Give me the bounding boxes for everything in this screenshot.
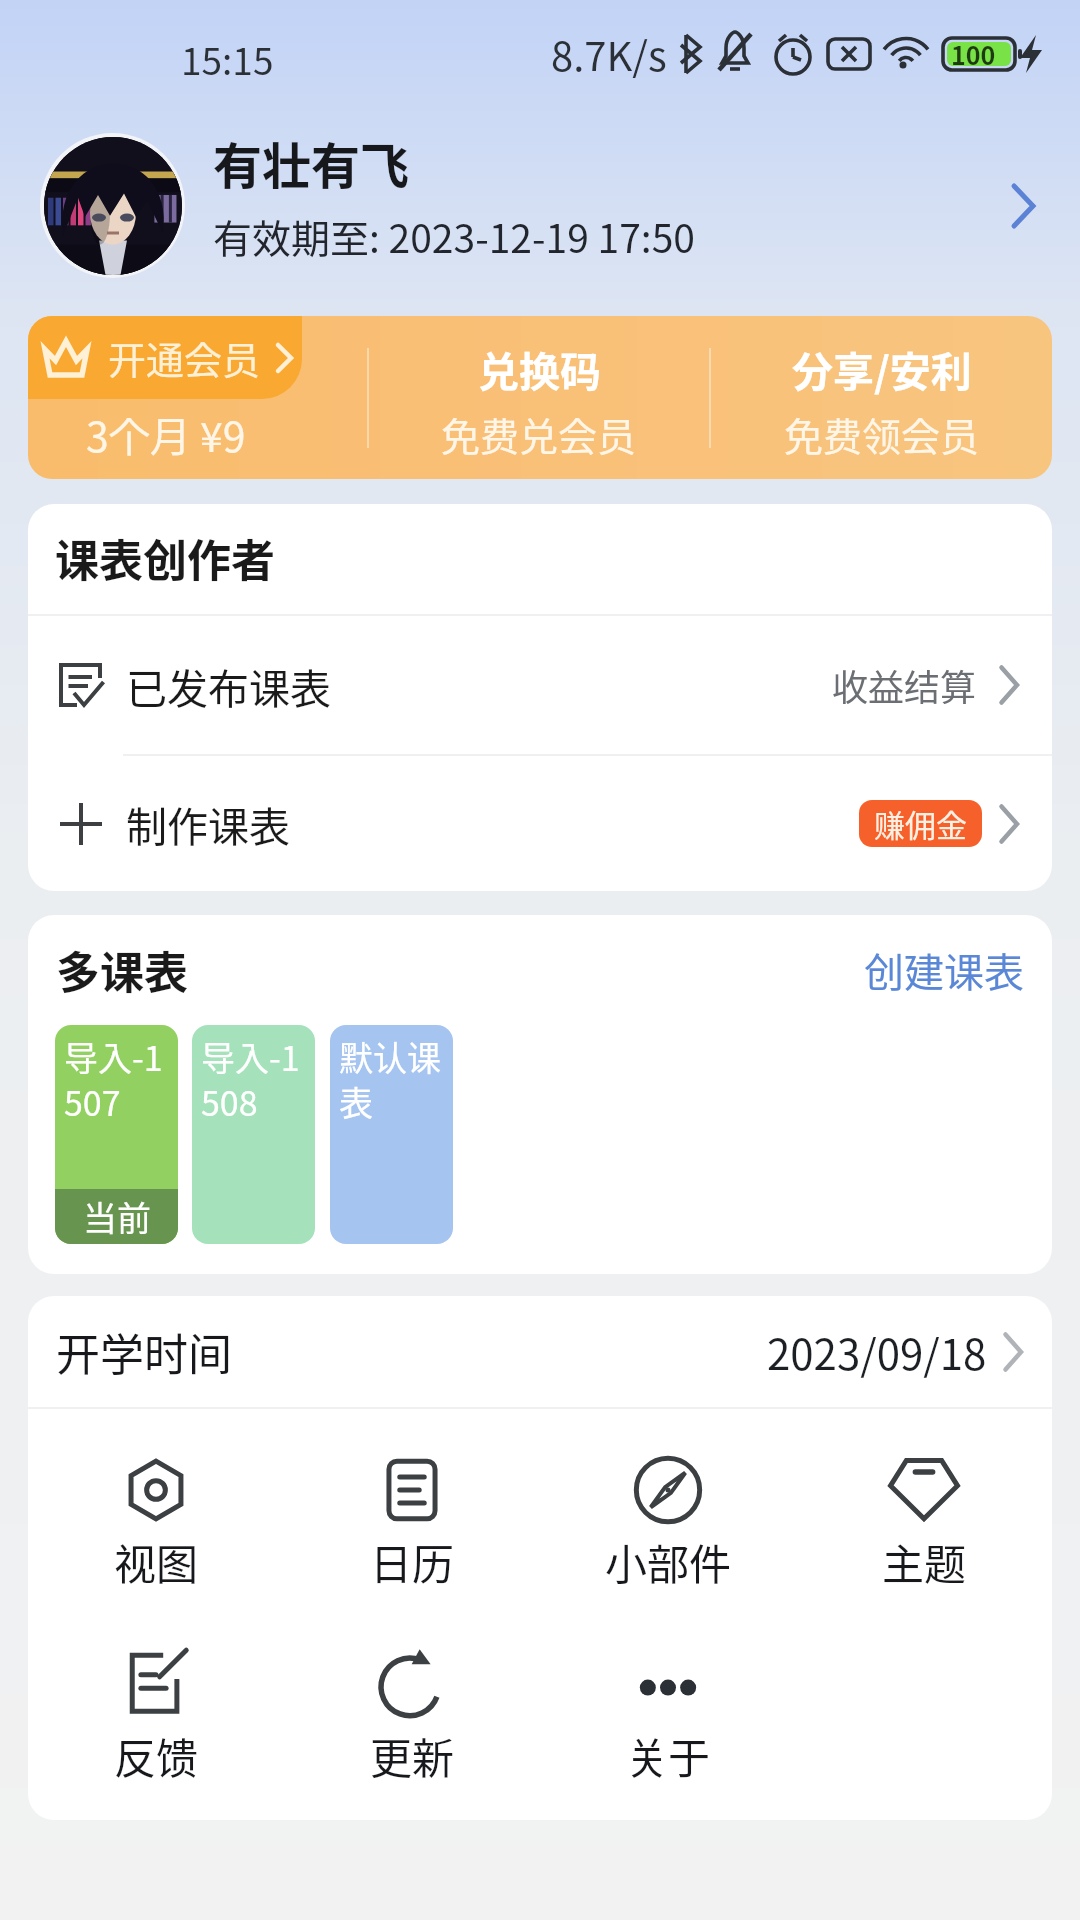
button[interactable]: 视图	[28, 1454, 284, 1592]
staticText: 已发布课表	[126, 656, 331, 715]
staticText: 默认课 表	[339, 1032, 441, 1126]
button[interactable]: 导入-1 508	[192, 1025, 315, 1244]
staticText: 导入-1 507	[64, 1032, 163, 1126]
button[interactable]: 分享/安利	[711, 316, 1052, 479]
button[interactable]: 默认课 表	[330, 1025, 453, 1244]
staticText: 赚佣金	[874, 801, 967, 846]
staticText: 15:15	[181, 32, 274, 86]
button[interactable]: 已发布课表	[28, 616, 1052, 754]
staticText: 课表创作者	[55, 526, 275, 590]
staticText: 导入-1 508	[201, 1032, 300, 1126]
button[interactable]: 有壮有飞	[0, 108, 1080, 303]
button[interactable]: 开通会员	[28, 316, 367, 479]
staticText: 有效期至: 2023-12-19 17:50	[213, 208, 695, 264]
staticText: 8.7K/s	[551, 25, 667, 83]
staticText: 免费领会员	[784, 406, 980, 462]
staticText: 100	[951, 36, 996, 72]
staticText: 创建课表	[864, 941, 1024, 999]
button[interactable]: 更新	[284, 1648, 540, 1786]
staticText: 3个月 ¥9	[86, 404, 246, 463]
button[interactable]: 制作课表	[28, 756, 1052, 891]
staticText: 制作课表	[126, 794, 290, 853]
staticText: 开学时间	[56, 1320, 232, 1384]
staticText: 收益结算	[832, 659, 977, 711]
staticText: 分享/安利	[792, 339, 972, 398]
staticText: 主题	[882, 1531, 967, 1592]
staticText: 更新	[370, 1725, 455, 1786]
staticText: 反馈	[114, 1725, 199, 1786]
button[interactable]: 小部件	[540, 1454, 796, 1592]
button[interactable]: 创建课表	[864, 941, 1024, 999]
staticText: 开通会员	[108, 330, 261, 385]
button[interactable]: 日历	[284, 1454, 540, 1592]
button[interactable]: 导入-1 507	[55, 1025, 178, 1244]
staticText: 视图	[114, 1531, 199, 1592]
button[interactable]: 开学时间	[28, 1296, 1052, 1407]
button[interactable]: 主题	[796, 1454, 1052, 1592]
staticText: 兑换码	[478, 339, 601, 398]
other: Open profile	[1010, 183, 1042, 229]
button[interactable]: 反馈	[28, 1648, 284, 1786]
staticText: 有壮有飞	[213, 127, 410, 198]
button[interactable]: 关于	[540, 1648, 796, 1786]
staticText: 多课表	[56, 938, 188, 1002]
staticText: 关于	[626, 1725, 711, 1786]
button[interactable]: 兑换码	[369, 316, 709, 479]
staticText: 当前	[83, 1192, 151, 1241]
staticText: 2023/09/18	[767, 1321, 987, 1382]
staticText: 日历	[370, 1531, 455, 1592]
staticText: 小部件	[605, 1531, 732, 1592]
staticText: 免费兑会员	[441, 406, 637, 462]
